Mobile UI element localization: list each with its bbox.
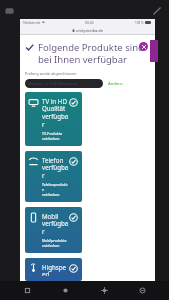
button[interactable]: Menu bbox=[131, 281, 153, 300]
staticText: Prüfung wurde abgeschlossen. bbox=[25, 71, 78, 76]
button[interactable]: Close bbox=[139, 42, 148, 51]
button[interactable]: Telefon verfügbar bbox=[25, 151, 82, 202]
staticText: Ändern bbox=[108, 81, 123, 87]
button[interactable]: Ändern bbox=[108, 81, 123, 87]
button[interactable]: Cast bbox=[151, 5, 163, 17]
button[interactable]: TV in HD Qualität verfügbar bbox=[25, 92, 82, 146]
staticText: 100 % bbox=[135, 21, 144, 25]
button[interactable]: Tabs bbox=[16, 281, 38, 300]
staticText: Telefon verfügbar bbox=[42, 156, 69, 180]
staticText: 00:43 bbox=[85, 20, 94, 25]
staticText: TV in HD Qualität verfügbar bbox=[42, 97, 69, 129]
staticText: Folgende Produkte sind bei Ihnen verfügb… bbox=[38, 41, 144, 66]
staticText: Musterstr. 12, 12345 Musterstadt bbox=[28, 82, 78, 86]
button[interactable]: Musterstr. 12, 12345 Musterstadt bbox=[25, 79, 103, 88]
button[interactable]: Home bbox=[93, 281, 115, 300]
button[interactable]: Highspeed Internet verfügbar bbox=[25, 258, 82, 281]
staticText: Mobil verfügbar bbox=[42, 212, 69, 236]
button[interactable]: Mobil verfügbar bbox=[25, 207, 82, 253]
staticText: unitymedia.de bbox=[76, 28, 103, 33]
button[interactable]: Screen record bbox=[4, 5, 16, 17]
staticText: Telefonprodukte entdecken bbox=[42, 182, 69, 197]
staticText: TV-Produkte entdecken bbox=[42, 131, 63, 141]
staticText: Highspeed Internet verfügbar bbox=[42, 263, 69, 276]
staticText: Mobilprodukte entdecken bbox=[42, 238, 67, 248]
button[interactable]: Bookmarks bbox=[54, 281, 76, 300]
button[interactable]: unitymedia.de bbox=[20, 26, 155, 34]
staticText: Telekom.de bbox=[23, 21, 41, 25]
